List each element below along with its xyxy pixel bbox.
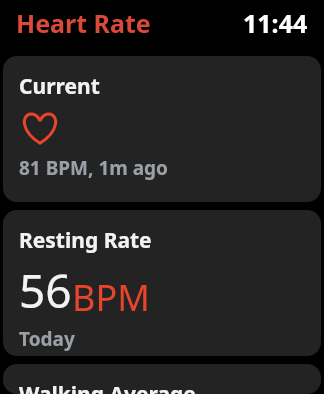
staticText: Current bbox=[19, 72, 100, 101]
staticText: BPM bbox=[72, 273, 150, 322]
staticText: 81 BPM, 1m ago bbox=[19, 155, 168, 181]
staticText: Heart Rate bbox=[16, 6, 151, 40]
button[interactable]: Current bbox=[3, 56, 321, 202]
button[interactable]: Resting Rate bbox=[3, 210, 321, 356]
staticText: 56 bbox=[19, 259, 72, 322]
staticText: Today bbox=[19, 326, 75, 352]
staticText: 11:44 bbox=[243, 6, 308, 40]
staticText: Resting Rate bbox=[19, 226, 152, 255]
staticText: Walking Average bbox=[19, 380, 196, 394]
button[interactable]: Walking Average bbox=[3, 364, 321, 394]
